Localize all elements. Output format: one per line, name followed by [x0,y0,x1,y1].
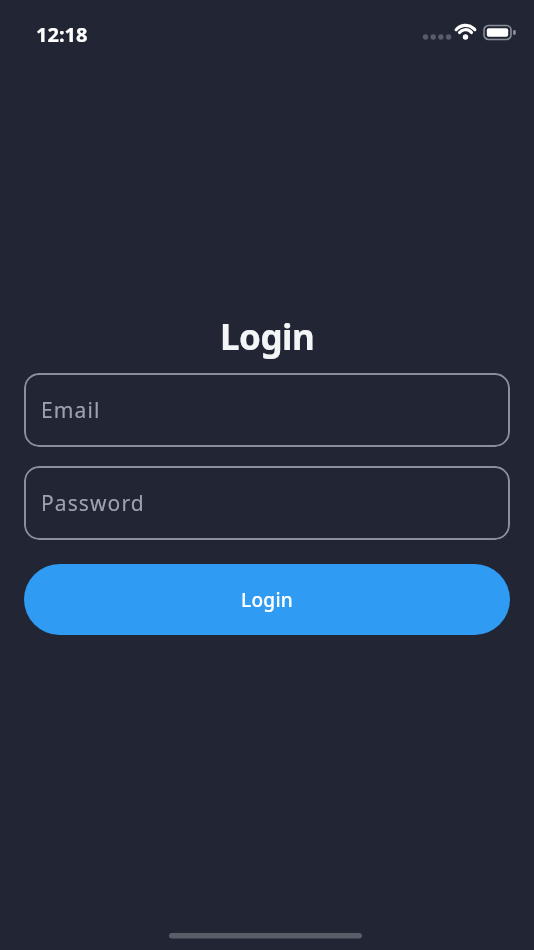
button[interactable]: Login [24,564,510,635]
staticText: Login [241,587,294,613]
staticText: Password [41,489,145,518]
staticText: Login [220,313,315,361]
button[interactable]: Email [24,373,510,447]
button[interactable]: Password [24,466,510,540]
staticText: 12:18 [36,21,88,48]
staticText: Email [41,396,101,425]
